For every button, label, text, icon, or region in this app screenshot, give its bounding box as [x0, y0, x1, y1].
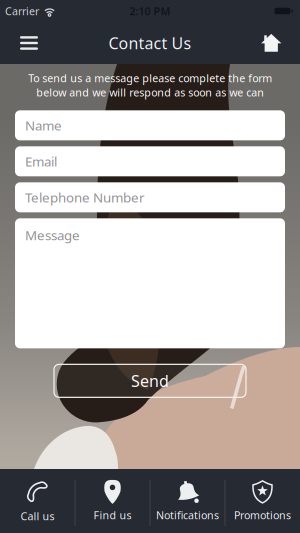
staticText: 2:10 PM [129, 4, 170, 18]
staticText: Notifications [156, 508, 219, 522]
button[interactable]: Call us [0, 469, 74, 533]
button[interactable] [0, 24, 38, 62]
staticText: Carrier [5, 4, 39, 18]
button[interactable]: Email [15, 146, 285, 176]
staticText: To send us a message please complete the… [28, 71, 272, 99]
staticText: Email [25, 152, 57, 170]
staticText: Telephone Number [25, 188, 145, 206]
button[interactable]: Message [15, 218, 285, 348]
staticText: Promotions [234, 508, 291, 522]
button[interactable]: Name [15, 110, 285, 140]
staticText: Message [25, 226, 80, 244]
button[interactable]: Promotions [225, 469, 299, 533]
staticText: Call us [20, 509, 54, 523]
staticText: Contact Us [108, 32, 191, 54]
staticText: Find us [93, 508, 131, 522]
button[interactable]: Telephone Number [15, 182, 285, 212]
staticText: Send [131, 370, 169, 391]
button[interactable]: Find us [75, 469, 149, 533]
staticText: Name [25, 116, 62, 134]
button[interactable]: Send [54, 364, 246, 397]
button[interactable] [261, 23, 300, 63]
button[interactable]: Notifications [150, 469, 224, 533]
